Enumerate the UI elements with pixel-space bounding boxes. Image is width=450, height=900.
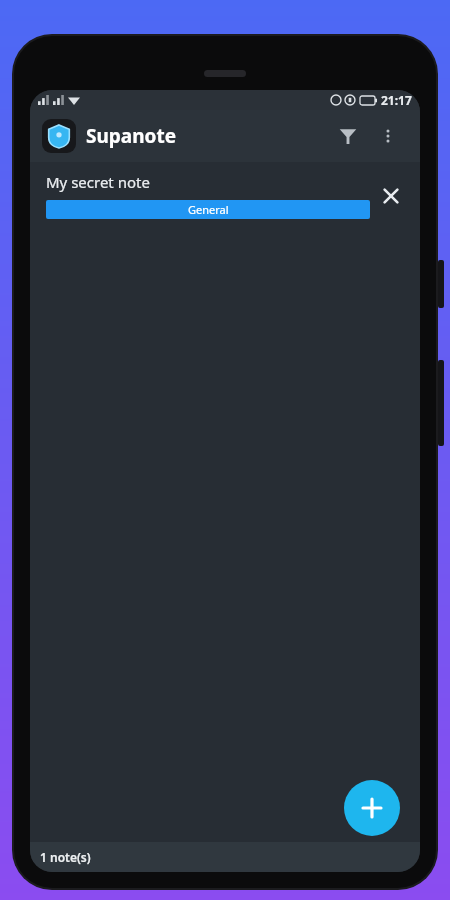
staticText: Supanote: [86, 123, 177, 149]
button[interactable]: Filter: [328, 116, 368, 156]
staticText: General: [188, 202, 229, 217]
staticText: My secret note: [46, 172, 150, 192]
button[interactable]: Close: [370, 175, 412, 217]
button[interactable]: General: [46, 200, 370, 219]
staticText: 1 note(s): [40, 849, 91, 865]
button[interactable]: My secret note: [30, 162, 420, 227]
button[interactable]: More options: [368, 116, 408, 156]
staticText: 21:17: [381, 92, 412, 108]
button[interactable]: Add note: [344, 780, 400, 836]
